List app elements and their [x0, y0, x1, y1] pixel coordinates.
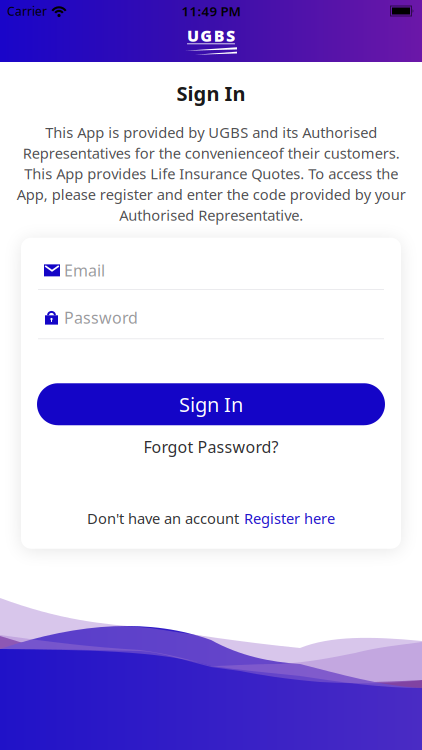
staticText: Don't have an account — [87, 508, 239, 528]
staticText: Register here — [244, 508, 335, 528]
button[interactable]: Forgot Password? — [21, 436, 401, 457]
button[interactable]: Register here — [244, 508, 335, 528]
staticText: Forgot Password? — [143, 436, 278, 457]
button[interactable]: Email — [21, 260, 401, 290]
staticText: Email — [64, 260, 105, 281]
staticText: Sign In — [179, 391, 243, 418]
staticText: Sign In — [176, 80, 245, 107]
staticText: Password — [64, 307, 138, 328]
button[interactable]: Sign In — [37, 383, 385, 425]
staticText: This App is provided by UGBS and its Aut… — [16, 123, 405, 225]
staticText: 11:49 PM — [181, 2, 240, 20]
staticText: Carrier — [7, 3, 47, 19]
button[interactable]: Password — [21, 307, 401, 339]
staticText: UGBS — [187, 25, 235, 46]
